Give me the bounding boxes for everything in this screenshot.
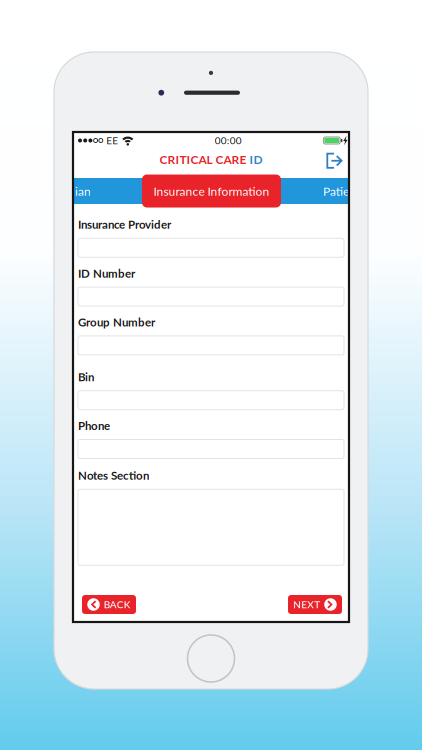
button[interactable]: NEXT — [288, 595, 342, 614]
staticText: Insurance Information — [153, 184, 269, 198]
staticText: Physician — [41, 184, 91, 198]
staticText: EE — [106, 134, 118, 146]
button[interactable]: Physician — [75, 178, 91, 204]
staticText: Insurance Provider — [78, 217, 171, 231]
staticText: Bin — [78, 370, 94, 384]
button[interactable]: Patient Information — [323, 178, 349, 204]
staticText: Patient Information — [323, 184, 422, 198]
staticText: Notes Section — [78, 468, 149, 482]
staticText: ID — [246, 152, 262, 166]
staticText: ID Number — [78, 266, 135, 280]
staticText: 00:00 — [215, 134, 242, 146]
button[interactable]: BACK — [82, 595, 136, 614]
staticText: NEXT — [293, 598, 320, 610]
staticText: Phone — [78, 419, 110, 432]
button[interactable]: Log out — [325, 150, 349, 171]
staticText: Group Number — [78, 315, 155, 329]
button[interactable]: Insurance Information — [142, 174, 281, 207]
staticText: BACK — [104, 598, 131, 610]
staticText: CRITICAL CARE — [159, 152, 246, 166]
